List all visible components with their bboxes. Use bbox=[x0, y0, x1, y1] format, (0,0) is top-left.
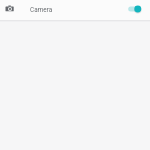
button[interactable]: Toggle camera bbox=[124, 0, 142, 20]
button[interactable]: Camera bbox=[0, 0, 150, 20]
staticText: Camera bbox=[30, 6, 53, 14]
